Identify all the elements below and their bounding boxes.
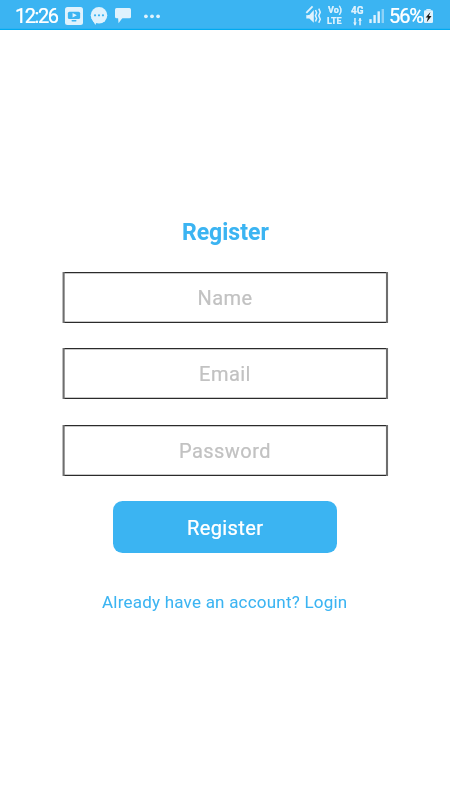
staticText: 12:26: [15, 4, 58, 27]
staticText: Password: [179, 439, 271, 462]
other: More notifications: [144, 8, 160, 24]
button[interactable]: Password: [63, 425, 387, 476]
other: Battery charging 56 percent: [424, 9, 433, 23]
staticText: Name: [197, 286, 253, 309]
other: Smart View: [65, 7, 83, 25]
staticText: Register: [182, 219, 269, 246]
other: Sound muted: [306, 8, 321, 24]
button[interactable]: Email: [63, 348, 387, 399]
other: Messenger notification: [90, 7, 108, 25]
staticText: Already have an account? Login: [102, 592, 348, 612]
button[interactable]: Name: [63, 272, 387, 323]
other: Message notification: [115, 7, 131, 24]
staticText: 56%: [389, 4, 423, 27]
button[interactable]: Already have an account? Login: [96, 589, 354, 615]
other: Mobile data activity: [352, 17, 363, 26]
staticText: 4G: [351, 5, 364, 17]
staticText: LTE: [327, 16, 342, 27]
staticText: Register: [187, 516, 264, 539]
button[interactable]: Register: [113, 501, 337, 553]
other: Signal strength: [369, 8, 384, 24]
staticText: Vo): [328, 5, 342, 16]
staticText: Email: [199, 362, 251, 385]
